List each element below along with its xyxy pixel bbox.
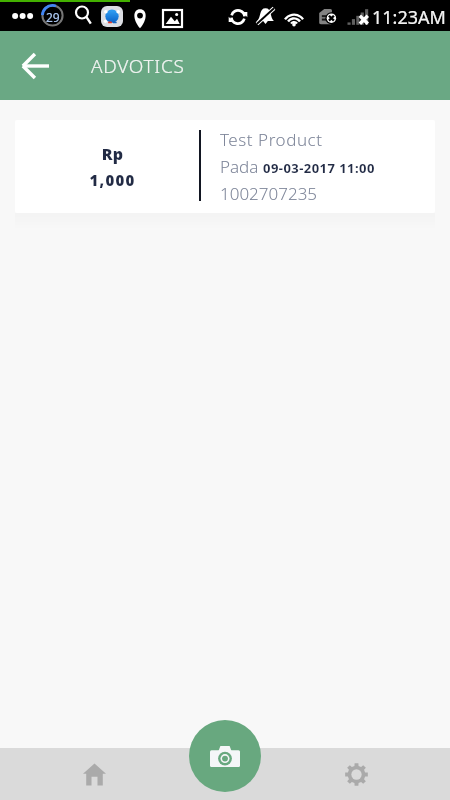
staticText: ADVOTICS	[91, 53, 185, 79]
button[interactable]: Camera	[189, 720, 261, 792]
staticText: Test Product	[220, 128, 323, 151]
staticText: 09-03-2017 11:00	[263, 159, 375, 177]
button[interactable]: Rp	[15, 120, 435, 213]
button[interactable]: Back	[13, 44, 57, 88]
staticText: 29	[46, 9, 60, 25]
button[interactable]: Settings	[330, 748, 382, 800]
staticText: 1,000	[15, 170, 210, 190]
staticText: 1002707235	[220, 182, 318, 205]
button[interactable]: Home	[68, 748, 120, 800]
staticText: 11:23AM	[372, 5, 446, 30]
staticText: Rp	[15, 143, 210, 165]
staticText: Pada	[220, 155, 263, 178]
